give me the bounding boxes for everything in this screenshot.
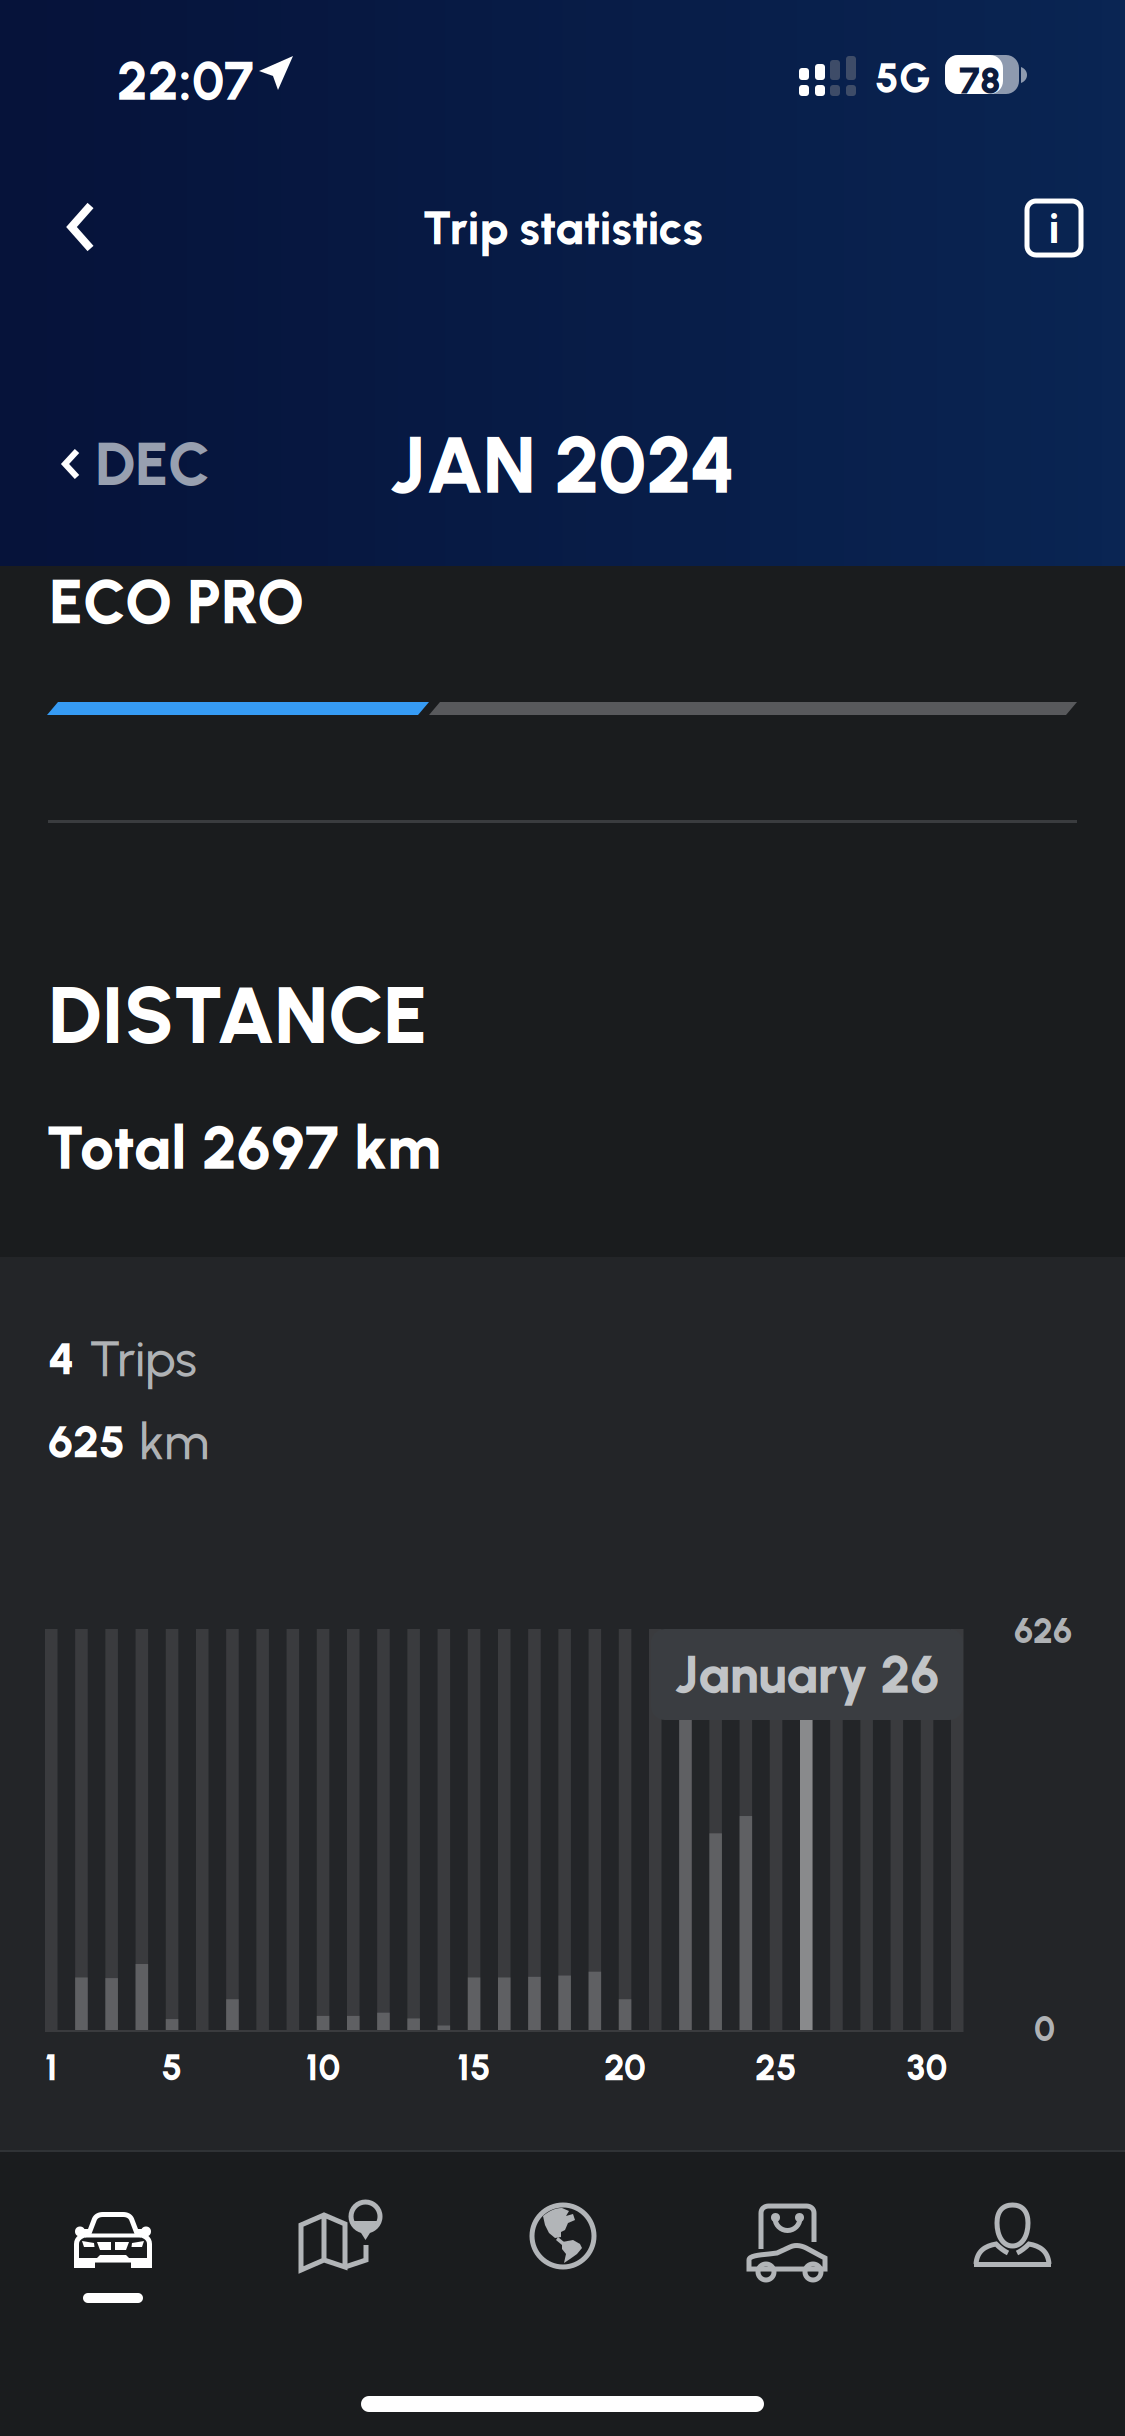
button[interactable]: Services xyxy=(675,2202,900,2332)
staticText: km xyxy=(139,1411,209,1472)
button[interactable]: Information xyxy=(999,173,1109,283)
staticText: 5 xyxy=(162,2046,183,2089)
staticText: 0 xyxy=(1034,2008,1055,2050)
staticText: 20 xyxy=(604,2046,646,2089)
staticText: 78 xyxy=(959,58,1001,103)
staticText: 1 xyxy=(45,2046,58,2089)
staticText: 25 xyxy=(755,2046,797,2089)
staticText: JAN 2024 xyxy=(389,418,735,512)
staticText: Trips xyxy=(89,1328,197,1389)
staticText: 10 xyxy=(306,2046,341,2089)
staticText: 626 xyxy=(1014,1610,1072,1652)
staticText: ECO PRO xyxy=(49,565,304,639)
staticText: 22:07 xyxy=(117,49,254,113)
button[interactable]: Discover xyxy=(450,2201,675,2331)
staticText: 4 xyxy=(48,1331,75,1386)
staticText: Trip statistics xyxy=(422,200,702,256)
staticText: Total 2697 km xyxy=(46,1111,441,1184)
button[interactable]: Back xyxy=(26,172,136,282)
staticText: 30 xyxy=(906,2046,947,2089)
button[interactable]: Map xyxy=(225,2202,450,2332)
staticText: i xyxy=(1048,202,1059,254)
staticText: 15 xyxy=(457,2046,491,2089)
staticText: DISTANCE xyxy=(48,967,427,1063)
button[interactable]: Previous month, December xyxy=(52,412,221,516)
button[interactable]: Vehicle xyxy=(0,2205,225,2335)
button[interactable]: Profile xyxy=(900,2201,1125,2331)
staticText: DEC xyxy=(95,428,211,500)
staticText: January 26 xyxy=(674,1643,939,1706)
staticText: 625 xyxy=(48,1414,125,1469)
staticText: 5G xyxy=(875,53,931,103)
